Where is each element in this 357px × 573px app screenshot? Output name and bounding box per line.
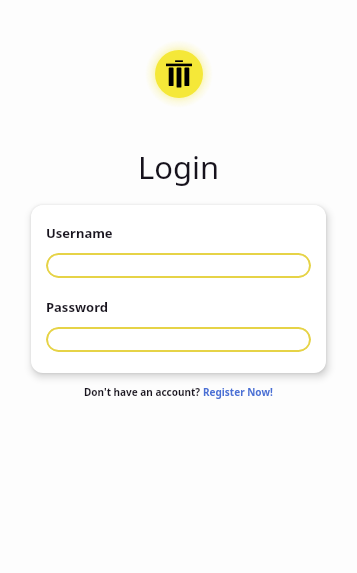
staticText: Register Now! xyxy=(203,385,273,399)
button[interactable]: Register Now! xyxy=(203,385,273,399)
button[interactable]: Username input xyxy=(46,253,311,278)
staticText: Password xyxy=(46,298,108,316)
staticText: Don't have an account? xyxy=(84,385,203,399)
button[interactable]: Password input xyxy=(46,327,311,352)
other: App logo xyxy=(155,50,203,98)
staticText: Login xyxy=(138,146,220,188)
staticText: Username xyxy=(46,224,113,242)
